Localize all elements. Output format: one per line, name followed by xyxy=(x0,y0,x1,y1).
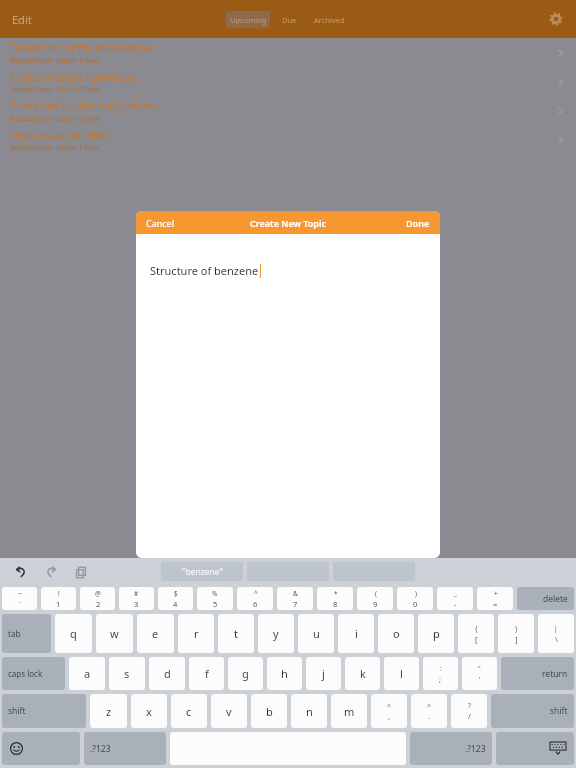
button[interactable]: { xyxy=(458,614,494,653)
button[interactable]: y xyxy=(258,614,294,653)
button[interactable]: shift xyxy=(2,694,86,728)
staticText: > xyxy=(427,701,431,710)
button[interactable]: ? xyxy=(451,694,487,728)
button[interactable]: | xyxy=(538,614,574,653)
staticText: return xyxy=(542,668,568,680)
staticText: High-resolution NMR xyxy=(10,128,109,142)
staticText: Archived xyxy=(314,15,345,25)
button[interactable]: return xyxy=(501,657,574,690)
button[interactable]: m xyxy=(331,694,367,728)
button[interactable]: e xyxy=(137,614,174,653)
button[interactable]: Undo xyxy=(12,563,30,581)
button[interactable]: caps lock xyxy=(2,657,65,690)
staticText: @ xyxy=(95,589,101,598)
staticText: { xyxy=(475,624,478,633)
button[interactable]: o xyxy=(378,614,414,653)
button[interactable]: k xyxy=(345,657,380,690)
button[interactable]: Upcoming xyxy=(226,11,270,28)
button[interactable]: p xyxy=(418,614,454,653)
button[interactable]: # xyxy=(119,587,154,610)
button[interactable]: + xyxy=(477,587,513,610)
staticText: ^ xyxy=(254,589,258,598)
button[interactable]: High-resolution NMR xyxy=(0,125,576,154)
button[interactable]: @ xyxy=(80,587,115,610)
button[interactable]: u xyxy=(298,614,334,653)
button[interactable]: delete xyxy=(517,587,574,610)
button[interactable]: shift xyxy=(491,694,574,728)
button[interactable]: .?123 xyxy=(84,732,166,765)
button[interactable]: c xyxy=(171,694,207,728)
button[interactable]: } xyxy=(498,614,534,653)
button[interactable]: ^ xyxy=(237,587,273,610)
staticText: / xyxy=(468,711,471,721)
button[interactable]: a xyxy=(69,657,105,690)
button[interactable]: : xyxy=(423,657,458,690)
button[interactable]: b xyxy=(251,694,287,728)
button[interactable]: _ xyxy=(437,587,473,610)
button[interactable]: x xyxy=(131,694,167,728)
button[interactable]: f xyxy=(189,657,224,690)
button[interactable]: Done xyxy=(403,214,433,232)
button[interactable]: Settings xyxy=(544,7,568,31)
button[interactable]: ~ xyxy=(2,587,37,610)
staticText: = xyxy=(493,599,498,609)
button[interactable]: q xyxy=(55,614,92,653)
staticText: Structure of benzene xyxy=(150,263,259,278)
button[interactable]: v xyxy=(211,694,247,728)
staticText: 6 xyxy=(253,599,258,609)
staticText: | xyxy=(554,624,558,633)
button[interactable]: i xyxy=(338,614,374,653)
button[interactable]: j xyxy=(306,657,341,690)
button[interactable]: z xyxy=(90,694,127,728)
button[interactable]: % xyxy=(197,587,233,610)
button[interactable]: ) xyxy=(397,587,433,610)
button[interactable]: > xyxy=(411,694,447,728)
button[interactable]: * xyxy=(317,587,353,610)
staticText: < xyxy=(387,701,391,710)
button[interactable]: $ xyxy=(158,587,193,610)
button[interactable]: n xyxy=(291,694,327,728)
staticText: m xyxy=(344,704,355,719)
staticText: y xyxy=(273,626,279,641)
button[interactable]: Structure of benzene xyxy=(150,263,261,278)
button[interactable]: r xyxy=(178,614,214,653)
button[interactable]: g xyxy=(228,657,263,690)
button[interactable]: h xyxy=(267,657,302,690)
button[interactable]: ! xyxy=(41,587,76,610)
staticText: Prebisch-Singer hypothesis xyxy=(10,70,138,84)
staticText: v xyxy=(226,704,232,719)
button[interactable]: s xyxy=(109,657,145,690)
staticText: caps lock xyxy=(8,668,43,679)
button[interactable]: Due xyxy=(270,11,308,28)
button[interactable]: Paste xyxy=(72,563,90,581)
button[interactable]: l xyxy=(384,657,419,690)
button[interactable]: Dissolution of the monasteries xyxy=(0,38,576,67)
button[interactable]: Edit xyxy=(8,8,36,31)
staticText: Cancel xyxy=(146,217,175,229)
button[interactable]: & xyxy=(277,587,313,610)
staticText: q xyxy=(70,626,77,641)
button[interactable]: w xyxy=(96,614,133,653)
staticText: p xyxy=(433,626,440,641)
staticText: ) xyxy=(415,589,417,598)
button[interactable]: Hide keyboard xyxy=(496,732,574,765)
button[interactable]: t xyxy=(218,614,254,653)
staticText: Upcoming xyxy=(230,15,267,25)
button[interactable]: < xyxy=(371,694,407,728)
button[interactable]: Prebisch-Singer hypothesis xyxy=(0,67,576,96)
button[interactable]: .?123 xyxy=(410,732,492,765)
staticText: - xyxy=(454,599,457,609)
button[interactable]: Prim's and Kruskal's algorithms xyxy=(0,96,576,125)
button[interactable]: Cancel xyxy=(143,214,178,232)
button[interactable]: Archived xyxy=(308,11,350,28)
button[interactable]: tab xyxy=(2,614,51,653)
button[interactable]: " xyxy=(462,657,497,690)
button[interactable]: "benzene" xyxy=(161,562,243,581)
button[interactable]: ( xyxy=(357,587,393,610)
button[interactable]: d xyxy=(149,657,185,690)
button[interactable]: Redo xyxy=(42,563,60,581)
button[interactable]: Emoji xyxy=(2,732,80,765)
